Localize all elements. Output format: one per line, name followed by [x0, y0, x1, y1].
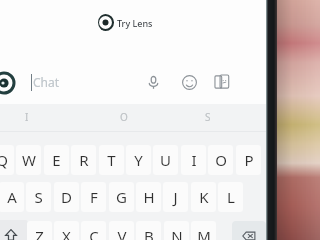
staticText: F [90, 187, 98, 207]
staticText: H [143, 187, 155, 207]
button[interactable]: S [26, 182, 51, 212]
other: Emoji [182, 75, 197, 90]
staticText: D [61, 187, 72, 207]
staticText: P [244, 150, 254, 170]
staticText: Try Lens [117, 17, 153, 29]
button[interactable]: V [109, 221, 134, 240]
button[interactable]: Stickers [213, 73, 230, 90]
staticText: C [89, 226, 99, 240]
staticText: E [52, 150, 61, 170]
staticText: O [215, 150, 227, 170]
staticText: V [117, 226, 127, 240]
staticText: N [171, 226, 183, 240]
staticText: G [116, 187, 127, 207]
staticText: L [227, 187, 235, 207]
button[interactable]: Q [0, 145, 14, 175]
button[interactable]: H [136, 182, 161, 212]
staticText: S [205, 110, 211, 124]
button[interactable]: D [54, 182, 79, 212]
button[interactable]: Chat [33, 72, 133, 92]
other: Voice note [146, 75, 161, 90]
staticText: A [7, 187, 17, 207]
button[interactable]: P [236, 145, 261, 175]
button[interactable]: T [99, 145, 124, 175]
staticText: X [62, 226, 71, 240]
button[interactable]: Y [126, 145, 151, 175]
staticText: Q [0, 150, 8, 170]
button[interactable]: F [81, 182, 106, 212]
button[interactable]: Try Lens [98, 13, 153, 32]
staticText: B [144, 226, 154, 240]
button[interactable]: A [0, 182, 24, 212]
staticText: S [34, 187, 43, 207]
staticText: M [197, 226, 211, 240]
button[interactable]: Voice note [145, 74, 161, 90]
button[interactable]: Shift [0, 220, 28, 240]
staticText: U [160, 150, 171, 170]
button[interactable]: X [54, 221, 79, 240]
button[interactable]: Emoji [181, 74, 197, 90]
button[interactable]: W [16, 145, 41, 175]
button[interactable]: O [208, 145, 233, 175]
button[interactable]: J [163, 182, 188, 212]
button[interactable]: N [164, 221, 189, 240]
button[interactable]: S [188, 106, 228, 128]
staticText: W [22, 150, 36, 170]
staticText: Y [134, 150, 143, 170]
button[interactable]: E [44, 145, 69, 175]
staticText: I [25, 110, 29, 124]
button[interactable]: G [109, 182, 134, 212]
button[interactable]: B [136, 221, 161, 240]
staticText: Z [35, 226, 44, 240]
other: Backspace [242, 229, 256, 240]
button[interactable]: O [104, 106, 144, 128]
staticText: Chat [33, 74, 60, 90]
button[interactable]: K [191, 182, 216, 212]
staticText: K [199, 187, 209, 207]
staticText: T [107, 150, 116, 170]
button[interactable]: Backspace [232, 221, 266, 240]
button[interactable]: L [218, 182, 243, 212]
button[interactable]: Z [27, 221, 52, 240]
other: Stickers [214, 74, 230, 90]
button[interactable]: I [181, 145, 206, 175]
other: Shift [4, 228, 18, 240]
staticText: J [173, 187, 178, 207]
staticText: O [120, 110, 128, 124]
button[interactable]: Camera [0, 73, 14, 93]
button[interactable]: U [153, 145, 178, 175]
button[interactable]: I [7, 106, 47, 128]
button[interactable]: R [71, 145, 96, 175]
button[interactable]: C [81, 221, 106, 240]
staticText: I [191, 150, 197, 170]
button[interactable]: M [191, 221, 216, 240]
staticText: R [79, 150, 89, 170]
